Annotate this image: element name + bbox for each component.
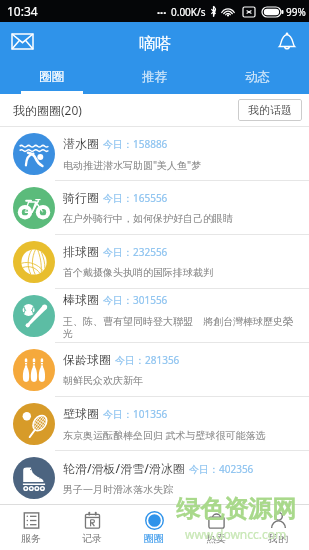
staticText: 排球圈: [63, 244, 99, 259]
button[interactable]: 壁球圈: [0, 397, 309, 451]
staticText: 99%: [286, 5, 306, 19]
staticText: 王、陈、曹有望同時登大聯盟 將創台灣棒球歷史榮光: [63, 314, 300, 340]
staticText: www.downcc.com: [185, 526, 287, 542]
button[interactable]: 我的话题: [238, 99, 302, 121]
staticText: 朝鲜民众欢庆新年: [63, 374, 143, 387]
staticText: 热卖: [206, 532, 226, 545]
button[interactable]: 推荐: [103, 61, 206, 94]
button[interactable]: 棒球圈: [0, 289, 309, 343]
staticText: 今日：158886: [103, 137, 168, 151]
staticText: 圈圈: [144, 532, 164, 545]
button[interactable]: 圈圈: [0, 61, 103, 94]
staticText: 0.00K/s: [171, 5, 206, 19]
staticText: 绿色资源网: [176, 494, 296, 524]
staticText: 男子一月时滑冰落水失踪: [63, 483, 173, 496]
staticText: 保龄球圈: [63, 352, 111, 367]
button[interactable]: Messages: [0, 22, 44, 61]
staticText: 骑行圈: [63, 190, 99, 205]
button[interactable]: 圈圈: [123, 505, 185, 550]
staticText: 推荐: [142, 69, 167, 85]
staticText: 在户外骑行中，如何保护好自己的眼睛: [63, 212, 233, 225]
staticText: 棒球圈: [63, 292, 99, 307]
staticText: 电动推进潜水写助圆"美人鱼"梦: [63, 158, 202, 172]
staticText: ...: [157, 2, 167, 17]
staticText: 我的话题: [248, 103, 292, 117]
staticText: 今日：281356: [115, 353, 180, 367]
button[interactable]: 热卖: [185, 505, 247, 550]
button[interactable]: 骑行圈: [0, 181, 309, 235]
staticText: 轮滑/滑板/滑雪/滑冰圈: [63, 460, 185, 476]
staticText: 潜水圈: [63, 136, 99, 151]
staticText: 今日：101356: [103, 407, 168, 421]
button[interactable]: 记录: [61, 505, 123, 550]
staticText: 首个戴摄像头执哨的国际排球裁判: [63, 266, 213, 279]
staticText: 我的: [268, 532, 288, 545]
staticText: 今日：301556: [103, 293, 168, 307]
staticText: 今日：232556: [103, 245, 168, 259]
button[interactable]: 排球圈: [0, 235, 309, 289]
staticText: 10:34: [7, 3, 38, 19]
button[interactable]: 动态: [206, 61, 309, 94]
button[interactable]: 服务: [0, 505, 61, 550]
staticText: 今日：165556: [103, 191, 168, 205]
staticText: 服务: [21, 532, 41, 545]
staticText: 圈圈: [39, 69, 64, 85]
staticText: 壁球圈: [63, 406, 99, 421]
button[interactable]: 保龄球圈: [0, 343, 309, 397]
staticText: 记录: [82, 532, 102, 545]
staticText: 今日：402356: [189, 462, 254, 476]
button[interactable]: 潜水圈: [0, 127, 309, 181]
staticText: 东京奥运酝酿棒垒回归 武术与壁球很可能落选: [63, 428, 266, 442]
staticText: 我的圈圈(20): [13, 102, 82, 118]
staticText: 动态: [245, 69, 270, 85]
button[interactable]: Notifications: [265, 22, 309, 61]
staticText: 嘀嗒: [139, 34, 171, 54]
button[interactable]: 轮滑/滑板/滑雪/滑冰圈: [0, 451, 309, 504]
button[interactable]: 我的: [247, 505, 309, 550]
